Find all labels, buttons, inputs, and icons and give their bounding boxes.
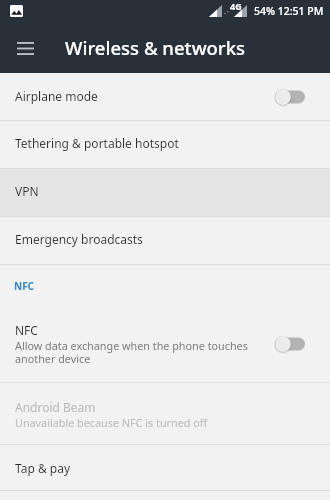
staticText: Android Beam <box>15 399 96 415</box>
button[interactable]: VPN <box>0 169 330 216</box>
staticText: Emergency broadcasts <box>15 231 143 247</box>
button[interactable]: NFC <box>0 306 330 382</box>
button[interactable]: Toggle NFC <box>271 325 309 363</box>
staticText: Airplane mode <box>15 88 98 104</box>
button[interactable]: Menu <box>10 33 40 63</box>
staticText: Wireless & networks <box>65 35 246 60</box>
button[interactable]: Tap & pay <box>0 445 330 490</box>
staticText: NFC <box>14 279 35 293</box>
staticText: Unavailable because NFC is turned off <box>15 415 208 430</box>
staticText: NFC <box>15 322 38 338</box>
staticText: Allow data exchange when the phone touch… <box>15 338 248 366</box>
button[interactable]: Android Beam <box>0 383 330 444</box>
staticText: Tap & pay <box>15 460 71 476</box>
button[interactable]: Tethering & portable hotspot <box>0 121 330 168</box>
button[interactable]: Toggle Airplane mode <box>271 78 309 116</box>
staticText: 54% 12:51 PM <box>254 4 324 18</box>
staticText: Tethering & portable hotspot <box>15 135 179 151</box>
button[interactable]: Emergency broadcasts <box>0 217 330 264</box>
staticText: VPN <box>15 183 39 199</box>
button[interactable]: Airplane mode <box>0 73 330 120</box>
staticText: 4G <box>230 0 242 12</box>
